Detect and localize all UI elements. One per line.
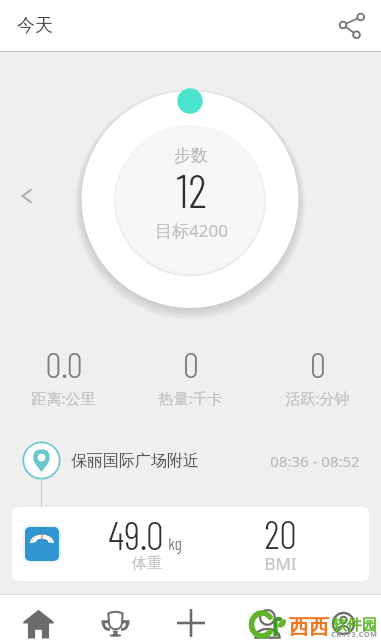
staticText: 0.0	[45, 342, 83, 385]
staticText: 49.0	[108, 510, 164, 558]
staticText: 西西	[289, 615, 329, 640]
staticText: 距离:公里	[31, 388, 96, 408]
button[interactable]: Previous day	[11, 180, 43, 212]
staticText: 0	[310, 342, 326, 385]
staticText: CR173.COM	[331, 630, 378, 640]
staticText: 软件园	[332, 616, 377, 635]
staticText: 热量:千卡	[158, 388, 223, 408]
staticText: BMI	[264, 552, 297, 575]
staticText: kg	[168, 533, 182, 553]
staticText: 12	[176, 161, 207, 217]
button[interactable]: Achievements	[77, 595, 153, 643]
button[interactable]: 49.0	[12, 507, 369, 581]
button[interactable]: 步数	[81, 90, 299, 308]
staticText: 活跃:分钟	[285, 388, 350, 408]
staticText: 今天	[17, 14, 53, 37]
staticText: 保丽国际广场附近	[71, 451, 199, 471]
staticText: 0	[183, 342, 199, 385]
staticText: 20	[264, 510, 297, 557]
button[interactable]: Home	[0, 595, 77, 643]
button[interactable]: Add	[153, 595, 229, 643]
staticText: 体重	[132, 554, 162, 573]
button[interactable]: 保丽国际广场附近	[0, 436, 381, 485]
staticText: 08:36 - 08:52	[270, 451, 360, 471]
button[interactable]: Share	[329, 4, 373, 48]
button[interactable]: Profile	[229, 595, 305, 643]
button[interactable]: More	[305, 595, 381, 643]
staticText: 步数	[174, 145, 208, 166]
staticText: 目标4200	[155, 219, 228, 242]
